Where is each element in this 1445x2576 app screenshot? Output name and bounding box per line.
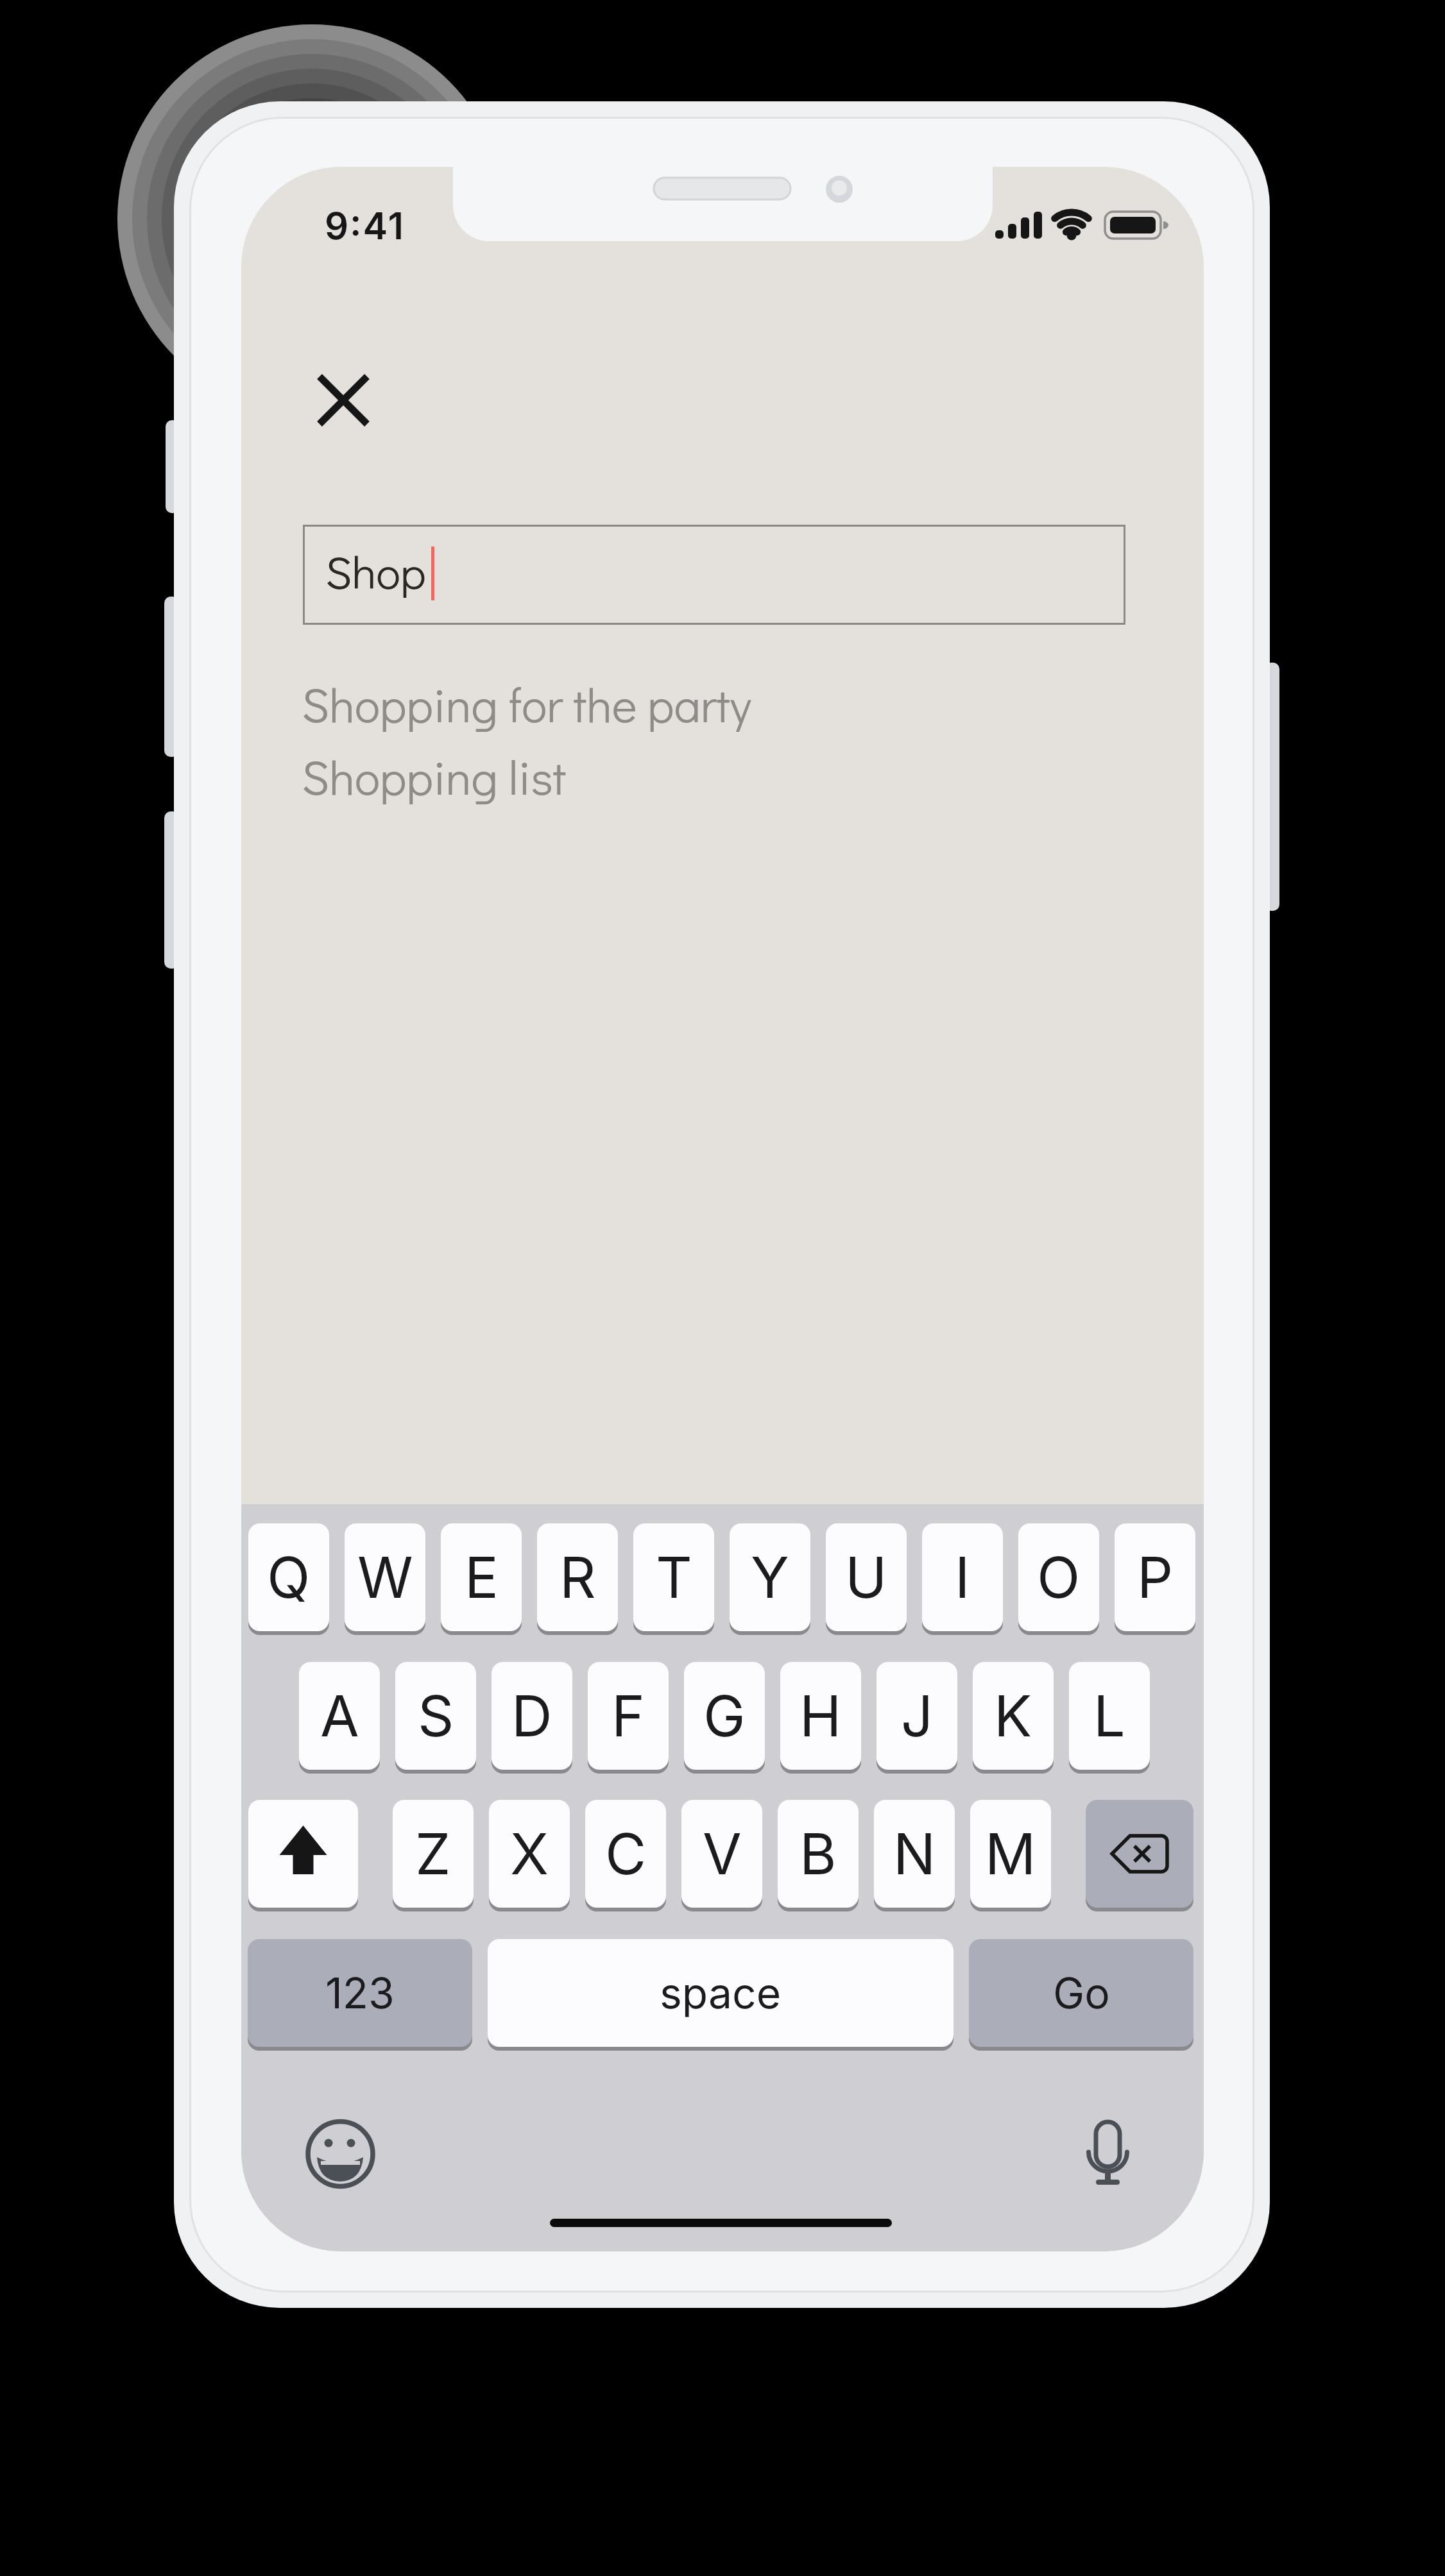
button[interactable]: B	[778, 1800, 859, 1908]
button[interactable]: L	[1069, 1662, 1150, 1770]
staticText: E	[465, 1543, 499, 1611]
staticText: 123	[325, 1967, 395, 2019]
button[interactable]: P	[1115, 1523, 1195, 1631]
button[interactable]: A	[299, 1662, 380, 1770]
button[interactable]: space	[488, 1939, 953, 2047]
staticText: H	[799, 1682, 842, 1750]
staticText: O	[1037, 1543, 1081, 1611]
button[interactable]: N	[874, 1800, 955, 1908]
button[interactable]	[1068, 2115, 1145, 2192]
staticText: N	[893, 1820, 936, 1888]
staticText: R	[560, 1543, 596, 1611]
button[interactable]: M	[970, 1800, 1051, 1908]
button[interactable]: D	[492, 1662, 572, 1770]
button[interactable]: Y	[730, 1523, 810, 1631]
staticText: space	[660, 1967, 782, 2019]
button[interactable]: S	[395, 1662, 476, 1770]
staticText: 9:41	[325, 203, 405, 248]
staticText: X	[510, 1820, 549, 1888]
staticText: U	[845, 1543, 887, 1611]
button[interactable]: Shopping for the party	[302, 673, 751, 735]
staticText: G	[703, 1682, 746, 1750]
button[interactable]: G	[684, 1662, 765, 1770]
staticText: Shop	[325, 541, 426, 601]
staticText: Q	[267, 1543, 311, 1611]
button[interactable]: W	[345, 1523, 425, 1631]
staticText: L	[1093, 1682, 1125, 1750]
button[interactable]: C	[585, 1800, 666, 1908]
button[interactable]: O	[1018, 1523, 1099, 1631]
button[interactable]: F	[588, 1662, 669, 1770]
staticText: I	[955, 1543, 970, 1611]
staticText: T	[656, 1543, 692, 1611]
staticText: Y	[751, 1543, 789, 1611]
staticText: J	[901, 1682, 934, 1750]
staticText: B	[799, 1820, 837, 1888]
button[interactable]: K	[973, 1662, 1054, 1770]
staticText: M	[985, 1820, 1036, 1888]
button[interactable]	[301, 2115, 378, 2192]
button[interactable]: X	[489, 1800, 570, 1908]
staticText: W	[357, 1543, 413, 1611]
button[interactable]: Go	[969, 1939, 1193, 2047]
button[interactable]: I	[922, 1523, 1003, 1631]
staticText: C	[605, 1820, 647, 1888]
button[interactable]: T	[633, 1523, 714, 1631]
button[interactable]: H	[780, 1662, 861, 1770]
staticText: S	[418, 1682, 454, 1750]
button[interactable]: R	[537, 1523, 618, 1631]
button[interactable]: Z	[393, 1800, 474, 1908]
staticText: P	[1137, 1543, 1174, 1611]
button[interactable]	[248, 1800, 358, 1908]
staticText: Go	[1053, 1967, 1110, 2019]
staticText: F	[611, 1682, 645, 1750]
button[interactable]: V	[681, 1800, 762, 1908]
button[interactable]	[305, 362, 382, 439]
button[interactable]: J	[876, 1662, 957, 1770]
staticText: V	[703, 1820, 742, 1888]
button[interactable]	[303, 525, 1125, 625]
button[interactable]: 123	[248, 1939, 472, 2047]
staticText: Z	[415, 1820, 451, 1888]
button[interactable]	[1086, 1800, 1193, 1908]
button[interactable]: E	[441, 1523, 522, 1631]
staticText: D	[511, 1682, 552, 1750]
button[interactable]: U	[826, 1523, 907, 1631]
button[interactable]: Q	[248, 1523, 329, 1631]
button[interactable]: Shopping list	[302, 745, 567, 808]
staticText: A	[320, 1682, 359, 1750]
staticText: K	[994, 1682, 1032, 1750]
